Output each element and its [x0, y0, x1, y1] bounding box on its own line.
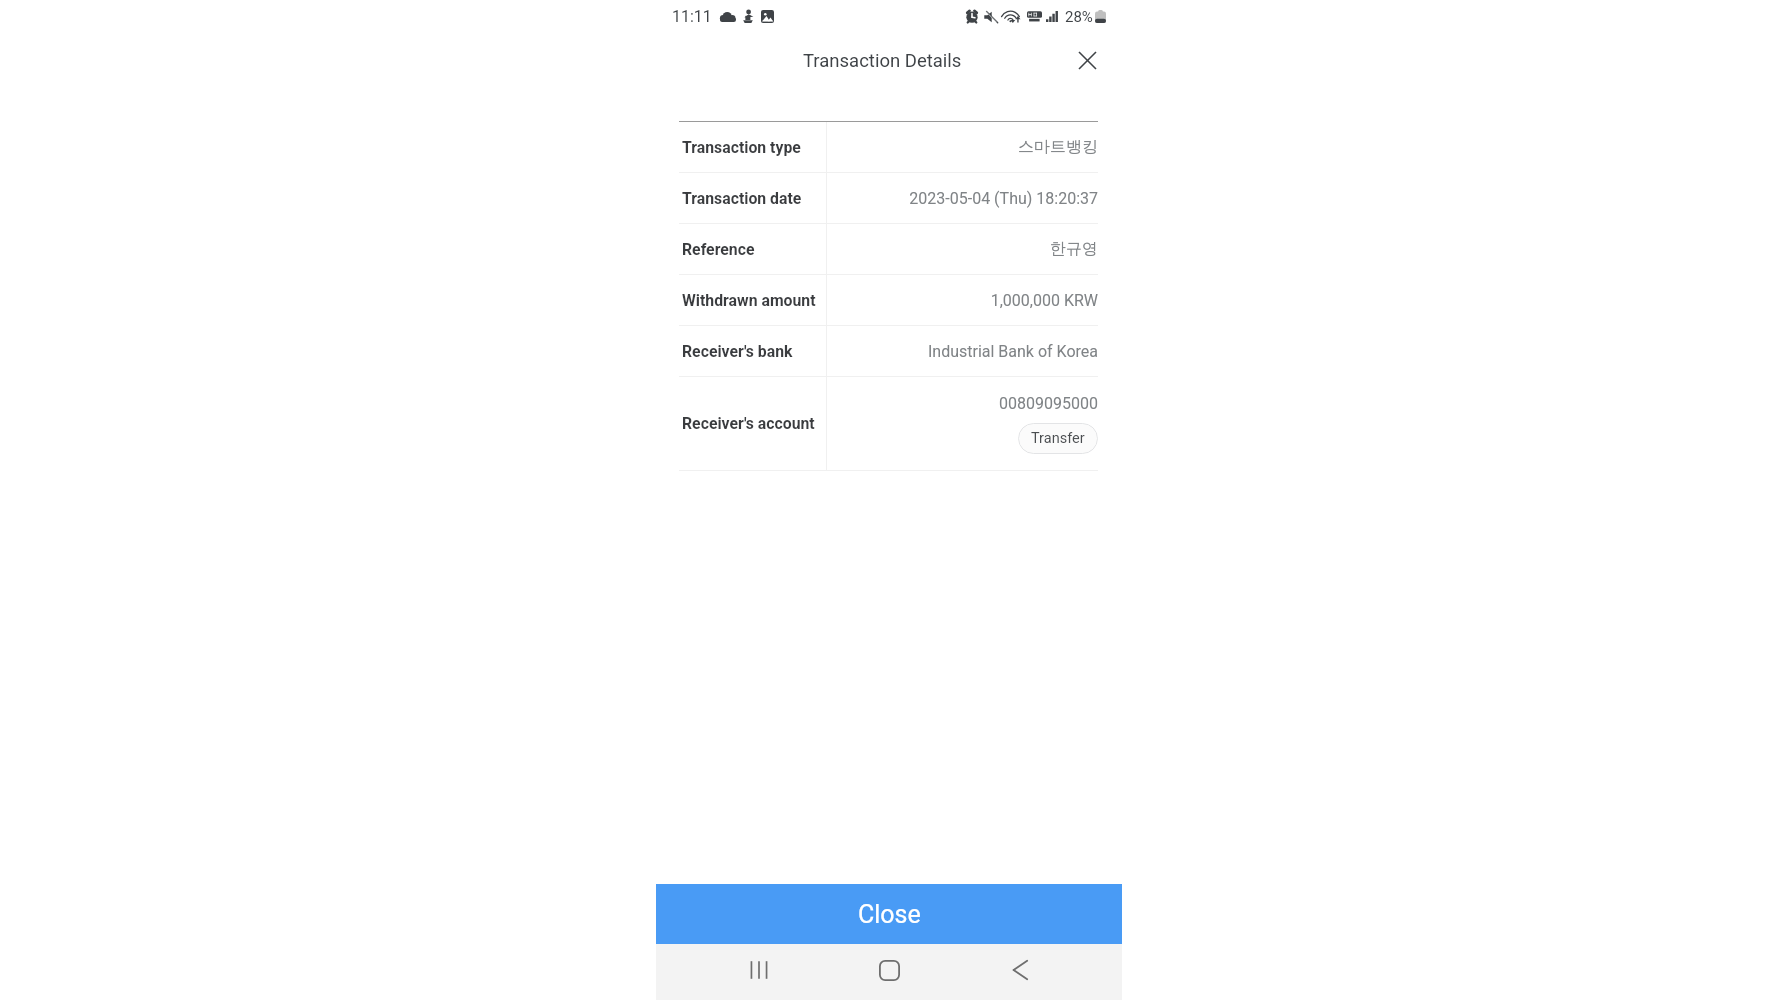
button[interactable]: Close — [1069, 42, 1105, 78]
staticText: 00809095000 — [999, 394, 1098, 413]
button[interactable]: Close — [656, 884, 1122, 944]
staticText: Transaction type — [682, 138, 801, 157]
staticText: Transaction date — [682, 189, 802, 208]
staticText: Transfer — [1031, 430, 1085, 447]
staticText: Reference — [682, 240, 755, 259]
staticText: 1,000,000 KRW — [990, 291, 1098, 310]
staticText: 한규영 — [1050, 239, 1098, 259]
staticText: Transaction Details — [803, 50, 962, 72]
staticText: Industrial Bank of Korea — [927, 342, 1098, 361]
staticText: Withdrawn amount — [682, 291, 816, 310]
staticText: 11:11 — [672, 7, 712, 26]
button[interactable]: Transfer — [1018, 423, 1098, 454]
staticText: Receiver's account — [682, 414, 815, 433]
button[interactable]: Back — [970, 944, 1070, 996]
staticText: 스마트뱅킹 — [1018, 137, 1098, 157]
staticText: 2023-05-04 (Thu) 18:20:37 — [909, 189, 1098, 208]
button[interactable]: Recent apps — [709, 944, 809, 996]
staticText: Receiver's bank — [682, 342, 793, 361]
staticText: Close — [858, 900, 921, 929]
staticText: 28% — [1065, 8, 1093, 26]
button[interactable]: Home — [809, 944, 970, 996]
